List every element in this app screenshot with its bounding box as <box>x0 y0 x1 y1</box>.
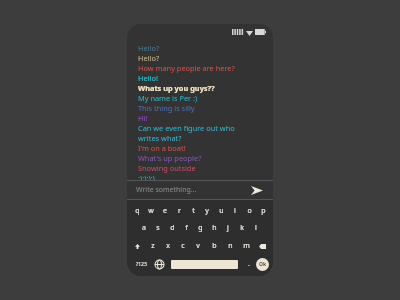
button[interactable]: s <box>151 221 165 235</box>
button[interactable]: I'm on a boat! <box>138 143 186 153</box>
button[interactable]: o <box>242 204 256 218</box>
staticText: . <box>248 259 250 269</box>
button[interactable]: c <box>175 239 190 253</box>
staticText: Ok <box>259 261 267 268</box>
staticText: x <box>166 241 170 251</box>
staticText: q <box>135 206 140 216</box>
button[interactable]: l <box>249 221 263 235</box>
staticText: a <box>142 223 146 233</box>
staticText: j <box>227 223 229 233</box>
staticText: m <box>243 241 250 251</box>
button[interactable]: w <box>144 204 158 218</box>
button[interactable]: x <box>160 239 175 253</box>
staticText: t <box>192 206 195 216</box>
button[interactable]: a <box>137 221 151 235</box>
staticText: p <box>261 206 266 216</box>
button[interactable]: u <box>214 204 228 218</box>
button[interactable]: z <box>145 239 160 253</box>
button[interactable]: What's up people? <box>138 153 202 163</box>
staticText: o <box>247 206 252 216</box>
staticText: v <box>196 241 200 251</box>
button[interactable]: r <box>172 204 186 218</box>
staticText: b <box>212 241 217 251</box>
button[interactable]: :):):):) <box>138 173 155 180</box>
staticText: k <box>240 223 244 233</box>
button[interactable]: Send <box>250 184 264 196</box>
staticText: g <box>198 223 203 233</box>
button[interactable]: k <box>235 221 249 235</box>
staticText: e <box>163 206 167 216</box>
staticText: n <box>228 241 233 251</box>
button[interactable]: g <box>193 221 207 235</box>
staticText: s <box>156 223 160 233</box>
button[interactable]: t <box>186 204 200 218</box>
staticText: Write something... <box>136 185 250 195</box>
button[interactable]: Hello! <box>138 73 158 83</box>
button[interactable]: writes what? <box>138 133 182 143</box>
staticText: f <box>185 223 188 233</box>
button[interactable]: Ok <box>256 258 269 271</box>
button[interactable]: Hi! <box>138 113 148 123</box>
staticText: z <box>151 241 155 251</box>
button[interactable]: Space <box>171 260 238 269</box>
button[interactable]: j <box>221 221 235 235</box>
staticText: u <box>219 206 224 216</box>
button[interactable]: Hello? <box>138 43 160 53</box>
button[interactable]: Write something... <box>127 181 273 199</box>
button[interactable]: How many people are here? <box>138 63 235 73</box>
button[interactable]: m <box>238 239 254 253</box>
staticText: w <box>148 206 154 216</box>
button[interactable]: d <box>165 221 179 235</box>
staticText: l <box>255 223 257 233</box>
button[interactable]: ?123 <box>131 256 151 272</box>
button[interactable]: y <box>200 204 214 218</box>
staticText: h <box>212 223 217 233</box>
button[interactable]: Shift <box>130 239 145 253</box>
button[interactable]: My name is Per :) <box>138 93 198 103</box>
button[interactable]: f <box>179 221 193 235</box>
button[interactable]: e <box>158 204 172 218</box>
staticText: d <box>170 223 175 233</box>
button[interactable]: p <box>256 204 270 218</box>
button[interactable]: q <box>130 204 144 218</box>
button[interactable]: Backspace <box>254 239 270 253</box>
button[interactable]: h <box>207 221 221 235</box>
button[interactable]: b <box>206 239 222 253</box>
staticText: c <box>181 241 185 251</box>
staticText: i <box>234 206 236 216</box>
staticText: r <box>178 206 181 216</box>
button[interactable]: Change language <box>151 256 167 272</box>
button[interactable]: Whats up you guys?? <box>138 83 215 93</box>
button[interactable]: n <box>222 239 238 253</box>
button[interactable]: . <box>242 256 256 272</box>
button[interactable]: Snowing outside <box>138 163 196 173</box>
button[interactable]: v <box>190 239 206 253</box>
staticText: ?123 <box>136 261 147 268</box>
button[interactable]: Hello? <box>138 53 160 63</box>
button[interactable]: Can we even figure out who <box>138 123 235 133</box>
button[interactable]: i <box>228 204 242 218</box>
button[interactable]: This thing is silly <box>138 103 195 113</box>
staticText: y <box>205 206 209 216</box>
